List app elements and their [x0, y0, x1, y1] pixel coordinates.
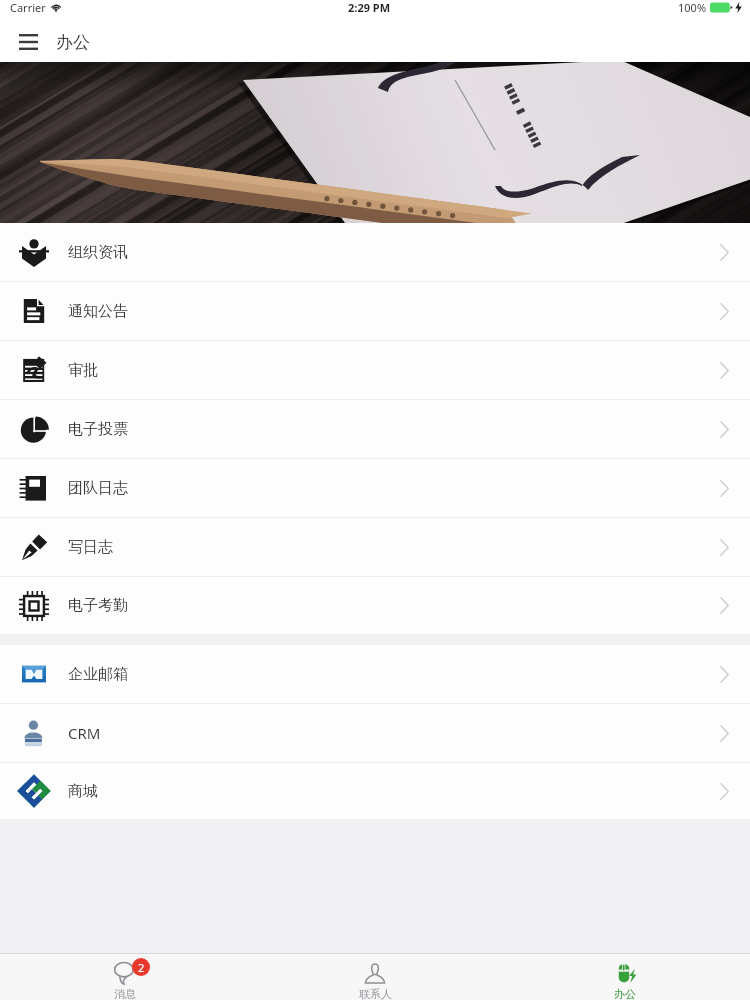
button[interactable]: 企业邮箱 — [0, 645, 750, 703]
staticText: 100% — [678, 0, 707, 15]
staticText: 商城 — [68, 782, 98, 801]
button[interactable]: 2 — [0, 954, 250, 1000]
staticText: 联系人 — [359, 987, 392, 1000]
button[interactable]: 审批 — [0, 341, 750, 399]
button[interactable]: 团队日志 — [0, 459, 750, 517]
button[interactable]: 办公 — [500, 954, 750, 1000]
staticText: 组织资讯 — [68, 243, 128, 262]
button[interactable]: 电子投票 — [0, 400, 750, 458]
button[interactable]: 组织资讯 — [0, 223, 750, 281]
staticText: 电子投票 — [68, 420, 128, 439]
staticText: 办公 — [56, 32, 90, 53]
button[interactable]: 商城 — [0, 763, 750, 819]
button[interactable]: 写日志 — [0, 518, 750, 576]
staticText: 审批 — [68, 361, 98, 380]
button[interactable]: Menu — [0, 22, 56, 62]
staticText: Carrier — [10, 0, 46, 15]
staticText: 电子考勤 — [68, 596, 128, 615]
button[interactable]: 联系人 — [250, 954, 500, 1000]
staticText: 2 — [138, 960, 145, 975]
button[interactable]: 通知公告 — [0, 282, 750, 340]
staticText: CRM — [68, 723, 101, 743]
staticText: 写日志 — [68, 538, 113, 557]
staticText: 通知公告 — [68, 302, 128, 321]
button[interactable]: CRM — [0, 704, 750, 762]
staticText: 办公 — [614, 987, 636, 1000]
staticText: 团队日志 — [68, 479, 128, 498]
button[interactable]: 电子考勤 — [0, 577, 750, 634]
staticText: 消息 — [114, 987, 136, 1000]
staticText: 2:29 PM — [348, 0, 391, 15]
staticText: 企业邮箱 — [68, 665, 128, 684]
